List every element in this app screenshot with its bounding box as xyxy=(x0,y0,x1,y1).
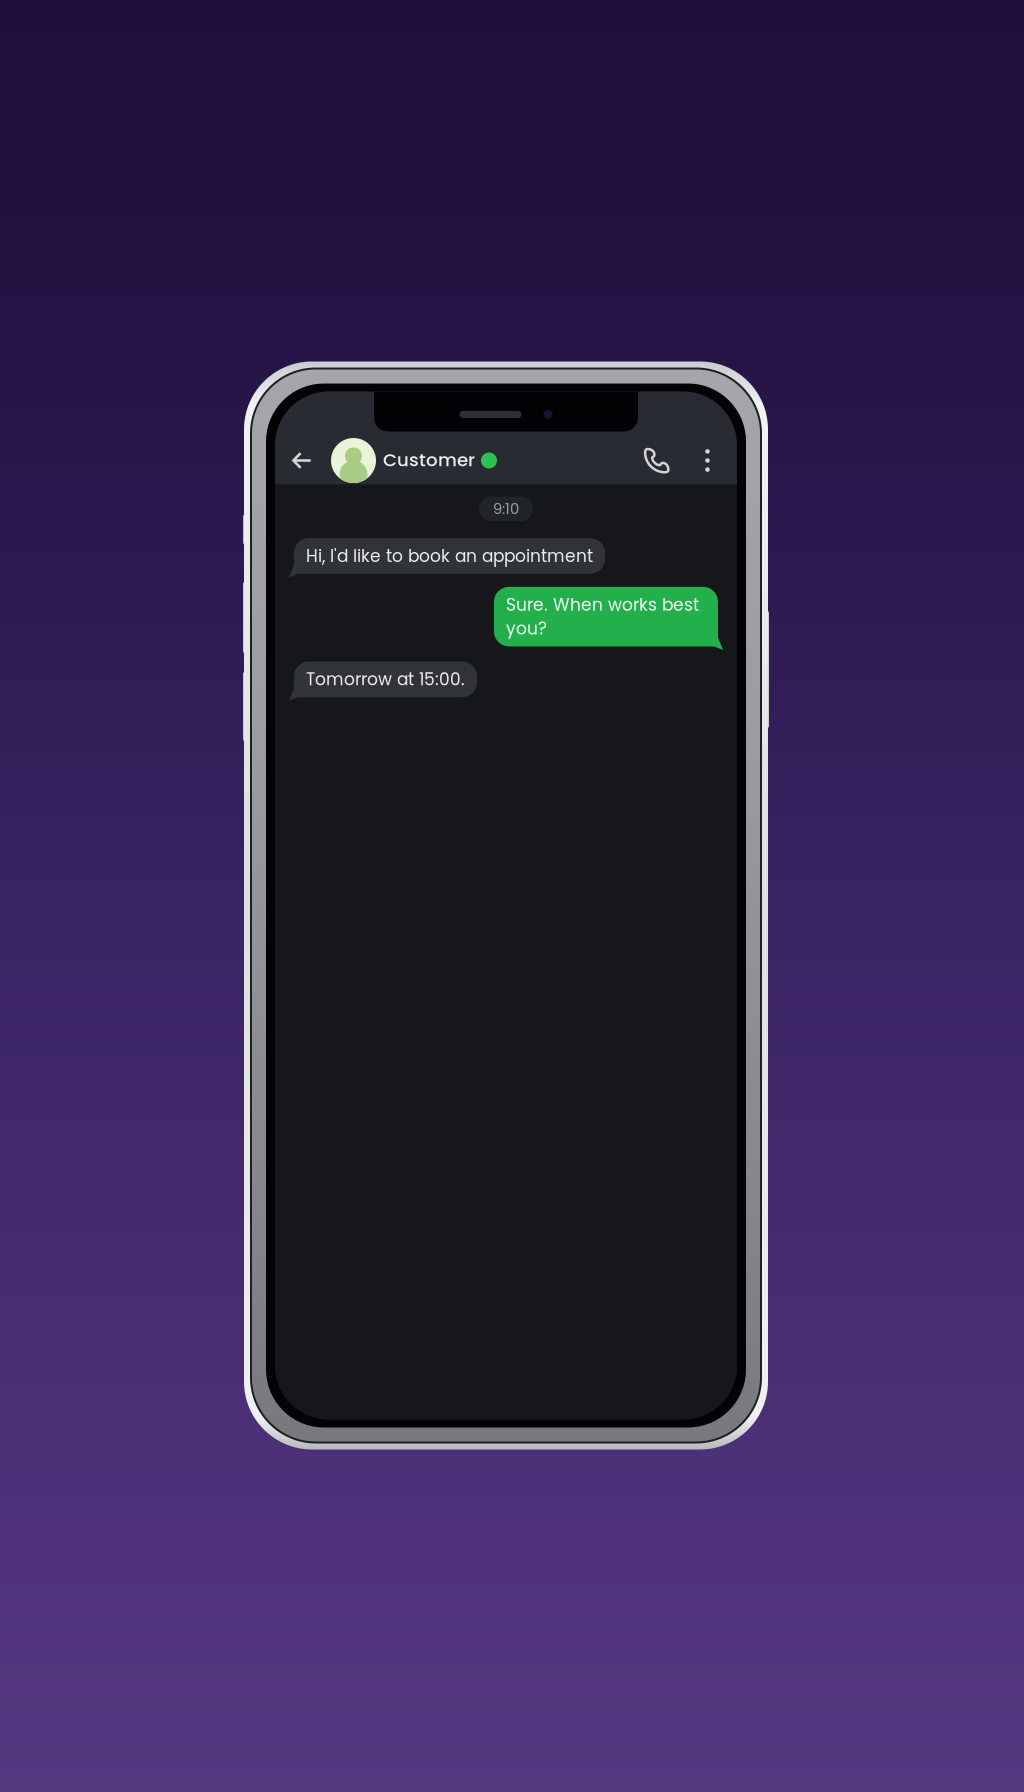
staticText: Sure. When works best you? xyxy=(506,593,699,640)
staticText: 9:10 xyxy=(493,498,519,519)
button[interactable]: Back xyxy=(283,436,321,484)
button[interactable]: Call xyxy=(625,436,689,484)
staticText: Customer xyxy=(383,447,475,473)
staticText: Hi, I'd like to book an appointment xyxy=(306,544,593,568)
staticText: Tomorrow at 15:00. xyxy=(306,667,465,691)
button[interactable]: More options xyxy=(689,436,726,484)
